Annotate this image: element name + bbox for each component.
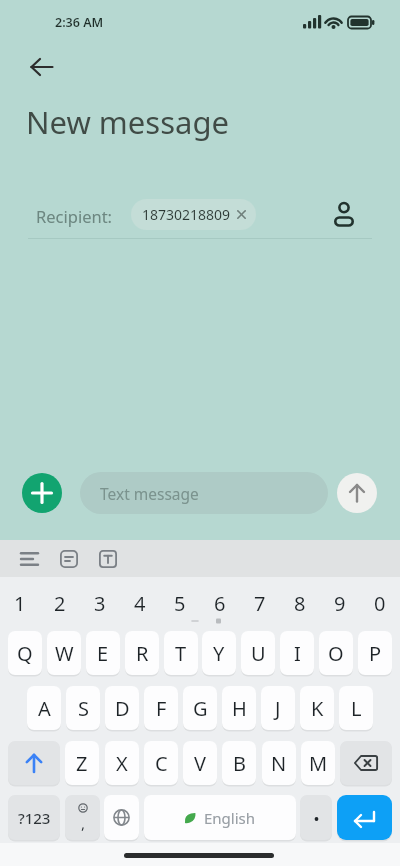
button[interactable]: W (47, 631, 81, 675)
button[interactable]: X (105, 741, 139, 785)
staticText: V (194, 750, 206, 777)
button[interactable] (95, 546, 121, 572)
button[interactable]: S (66, 686, 100, 730)
button[interactable] (330, 197, 358, 231)
button[interactable]: ?123 (8, 795, 60, 840)
button[interactable]: F (144, 686, 178, 730)
button[interactable] (8, 741, 60, 785)
button[interactable]: Y (202, 631, 236, 675)
staticText: I (294, 640, 301, 667)
staticText: 18730218809 (142, 205, 231, 224)
button[interactable] (337, 795, 392, 840)
staticText: C (155, 750, 168, 777)
button[interactable]: J (261, 686, 295, 730)
staticText: M (309, 750, 328, 777)
button[interactable]: 8 (280, 581, 320, 625)
staticText: New message (26, 101, 229, 143)
staticText: Q (17, 640, 33, 667)
staticText: T (175, 640, 187, 667)
staticText: 1 (14, 590, 26, 617)
staticText: F (156, 695, 167, 722)
button[interactable]: 5 (160, 581, 200, 625)
staticText: R (136, 640, 149, 667)
staticText: G (193, 695, 208, 722)
staticText: 5 (174, 590, 186, 617)
button[interactable]: P (358, 631, 392, 675)
staticText: 3 (94, 590, 106, 617)
button[interactable]: Text message (80, 472, 328, 514)
staticText: Z (76, 750, 88, 777)
staticText: Text message (100, 483, 199, 504)
staticText: K (311, 695, 324, 722)
staticText: D (115, 695, 130, 722)
button[interactable]: O (319, 631, 353, 675)
staticText: L (351, 695, 362, 722)
button[interactable] (56, 546, 82, 572)
button[interactable]: 0 (360, 581, 400, 625)
button[interactable] (104, 795, 139, 840)
staticText: A (38, 695, 51, 722)
staticText: 0 (374, 590, 386, 617)
button[interactable] (22, 49, 62, 85)
staticText: U (251, 640, 266, 667)
staticText: 4 (134, 590, 146, 617)
staticText: J (275, 695, 281, 722)
staticText: , (81, 813, 86, 833)
staticText: P (369, 640, 382, 667)
button[interactable]: 4 (120, 581, 160, 625)
button[interactable]: C (144, 741, 178, 785)
button[interactable]: 3 (80, 581, 120, 625)
button[interactable]: , (65, 795, 100, 840)
button[interactable] (337, 473, 377, 513)
button[interactable]: R (125, 631, 159, 675)
button[interactable]: D (105, 686, 139, 730)
button[interactable]: M (301, 741, 335, 785)
button[interactable] (17, 546, 43, 572)
staticText: E (97, 640, 109, 667)
button[interactable]: G (183, 686, 217, 730)
button[interactable]: I (280, 631, 314, 675)
staticText: S (78, 695, 89, 722)
button[interactable]: 1 (0, 581, 40, 625)
button[interactable]: 2 (40, 581, 80, 625)
staticText: 7 (254, 590, 266, 617)
button[interactable]: A (27, 686, 61, 730)
staticText: Recipient: (36, 205, 113, 227)
button[interactable]: K (300, 686, 334, 730)
button[interactable] (22, 473, 62, 513)
staticText: English (204, 808, 256, 828)
staticText: 2 (54, 590, 66, 617)
button[interactable]: H (222, 686, 256, 730)
button[interactable]: Q (8, 631, 42, 675)
button[interactable]: 18730218809 (131, 199, 256, 230)
staticText: 6 (214, 590, 226, 617)
button[interactable]: 7 (240, 581, 280, 625)
staticText: 8 (294, 590, 306, 617)
button[interactable]: E (86, 631, 120, 675)
button[interactable]: 9 (320, 581, 360, 625)
button[interactable] (340, 741, 392, 785)
button[interactable]: V (183, 741, 217, 785)
staticText: X (116, 750, 128, 777)
button[interactable]: B (222, 741, 256, 785)
staticText: O (328, 640, 344, 667)
button[interactable]: L (339, 686, 373, 730)
button[interactable]: N (262, 741, 296, 785)
staticText: H (232, 695, 247, 722)
staticText: Y (213, 640, 225, 667)
button[interactable]: Z (65, 741, 99, 785)
staticText: N (271, 750, 287, 777)
staticText: B (233, 750, 246, 777)
staticText: 2:36 AM (55, 14, 104, 31)
button[interactable]: English (144, 795, 296, 840)
button[interactable]: U (241, 631, 275, 675)
staticText: W (55, 640, 74, 667)
button[interactable]: T (164, 631, 198, 675)
staticText: ?123 (18, 808, 51, 828)
button[interactable] (300, 795, 332, 840)
staticText: 9 (334, 590, 346, 617)
button[interactable]: 6 (200, 581, 240, 625)
